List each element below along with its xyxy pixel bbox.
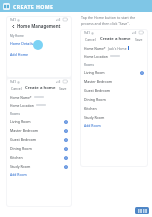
button[interactable]: App icon [0, 0, 152, 12]
staticText: Living Room [84, 70, 105, 75]
staticText: 9:41 [10, 80, 16, 84]
other: Room settings [64, 156, 68, 160]
staticText: Save [135, 37, 143, 42]
button[interactable]: Logo badge [135, 207, 149, 214]
staticText: 9:41 [10, 18, 16, 22]
staticText: Cancel [85, 37, 96, 42]
staticText: Dining Room [84, 97, 106, 102]
staticText: Guest Bedroom [10, 137, 37, 142]
staticText: Add Room [84, 123, 101, 128]
other: Room settings [64, 129, 68, 133]
staticText: Living Room [10, 119, 31, 124]
button[interactable]: Save [134, 36, 144, 43]
button[interactable]: Study Room [81, 113, 147, 122]
staticText: Master Bedroom [10, 128, 39, 133]
button[interactable]: Dining Room [7, 144, 71, 153]
button[interactable]: Kitchen [81, 104, 147, 113]
button[interactable]: Add Room [7, 171, 71, 178]
other: Room settings [64, 147, 68, 151]
button[interactable]: Dining Room [81, 95, 147, 104]
button[interactable]: Home Name* [7, 94, 71, 100]
staticText: Study Room [10, 164, 31, 169]
other: Room settings [64, 165, 68, 169]
staticText: Dining Room [10, 146, 32, 151]
button[interactable]: Kitchen [7, 153, 71, 162]
staticText: CREATE HOME [13, 3, 54, 10]
button[interactable]: Home Name* [81, 45, 147, 51]
staticText: Save [59, 86, 67, 91]
staticText: Create a home [100, 36, 131, 42]
staticText: Rooms [84, 63, 94, 67]
button[interactable]: Guest Bedroom [7, 135, 71, 144]
staticText: Kitchen [84, 106, 97, 111]
staticText: Home Management [17, 23, 61, 29]
staticText: Rooms [10, 112, 20, 116]
staticText: 9:41 [84, 31, 90, 35]
staticText: Create a home [25, 85, 56, 91]
other: Room settings [64, 138, 68, 142]
other: App icon [3, 3, 10, 10]
staticText: Home Details [10, 41, 34, 46]
button[interactable]: Home Location [7, 102, 71, 108]
staticText: Home Location [84, 54, 108, 58]
button[interactable]: Guest Bedroom [81, 86, 147, 95]
button[interactable]: Cancel [10, 85, 23, 92]
staticText: Master Bedroom [84, 79, 113, 84]
staticText: Guest Bedroom [84, 88, 111, 93]
other: Room settings [140, 71, 144, 75]
staticText: Add Room [10, 172, 27, 177]
staticText: Tap the Home button to start the [81, 15, 136, 20]
staticText: Study Room [84, 115, 105, 120]
staticText: My Home [10, 34, 24, 38]
staticText: Home Name* [84, 46, 106, 50]
button[interactable]: Master Bedroom [81, 77, 147, 86]
staticText: Kitchen [10, 155, 23, 160]
button[interactable]: Add Home [7, 51, 71, 57]
button[interactable]: Home Location [81, 53, 147, 59]
button[interactable]: Living Room [7, 117, 71, 126]
button[interactable]: Study Room [7, 162, 71, 171]
button[interactable]: Master Bedroom [7, 126, 71, 135]
staticText: Home Location [10, 103, 34, 107]
button[interactable]: Save [58, 85, 68, 92]
staticText: process and then click "Save". [81, 21, 130, 26]
staticText: Add Home [10, 52, 29, 57]
button[interactable]: Cancel [84, 36, 97, 43]
button[interactable]: Add Room [81, 122, 147, 129]
staticText: Home Name* [10, 95, 32, 99]
staticText: Jack's Home [108, 46, 127, 50]
other: Room settings [64, 120, 68, 124]
button[interactable]: Living Room [81, 68, 147, 77]
button[interactable]: Home Details [7, 40, 71, 46]
button[interactable]: Back [10, 23, 16, 29]
staticText: Cancel [11, 86, 22, 91]
